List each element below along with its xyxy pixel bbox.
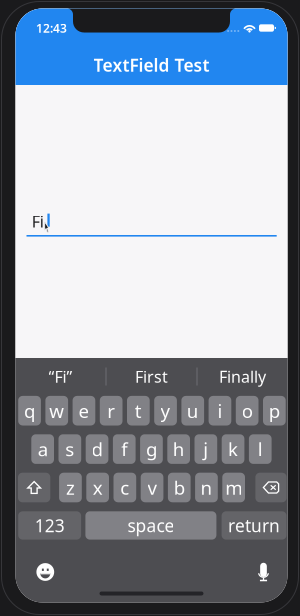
staticText: o: [242, 398, 253, 423]
staticText: Finally: [219, 366, 266, 387]
button[interactable]: i: [209, 396, 231, 425]
staticText: v: [147, 475, 156, 500]
button[interactable]: return: [222, 511, 286, 540]
button[interactable]: e: [73, 396, 95, 425]
button[interactable]: 123: [18, 511, 81, 540]
button[interactable]: m: [222, 473, 245, 502]
staticText: return: [228, 514, 280, 537]
staticText: q: [24, 398, 35, 423]
button[interactable]: j: [194, 434, 217, 464]
button[interactable]: k: [222, 434, 244, 464]
staticText: p: [269, 398, 280, 423]
button[interactable]: First: [106, 358, 196, 395]
button[interactable]: u: [181, 396, 204, 425]
staticText: space: [127, 514, 174, 537]
staticText: l: [258, 437, 263, 461]
button[interactable]: f: [113, 434, 136, 464]
staticText: a: [38, 437, 48, 461]
staticText: u: [187, 398, 199, 423]
staticText: 123: [35, 514, 65, 537]
staticText: f: [121, 437, 127, 461]
staticText: y: [160, 398, 170, 423]
button[interactable]: Finally: [197, 358, 287, 395]
button[interactable]: space: [85, 511, 216, 540]
button[interactable]: Emoji keyboard: [26, 555, 64, 589]
button[interactable]: a: [31, 434, 54, 464]
staticText: i: [217, 398, 222, 423]
staticText: First: [135, 366, 168, 387]
button[interactable]: o: [236, 396, 258, 425]
button[interactable]: n: [195, 473, 218, 502]
staticText: w: [49, 398, 64, 423]
staticText: h: [173, 437, 185, 461]
button[interactable]: y: [154, 396, 177, 425]
staticText: n: [200, 475, 212, 500]
button[interactable]: p: [263, 396, 286, 425]
button[interactable]: l: [249, 434, 272, 464]
button[interactable]: x: [86, 473, 109, 502]
staticText: k: [228, 437, 238, 461]
staticText: t: [135, 398, 142, 423]
staticText: s: [65, 437, 74, 461]
staticText: “Fi”: [48, 366, 72, 387]
button[interactable]: “Fi”: [15, 358, 105, 395]
staticText: TextField Test: [93, 53, 209, 76]
staticText: m: [225, 475, 242, 500]
staticText: d: [91, 437, 102, 461]
staticText: r: [107, 398, 115, 423]
staticText: z: [66, 475, 75, 500]
button[interactable]: q: [18, 396, 41, 425]
staticText: g: [146, 437, 157, 461]
button[interactable]: r: [100, 396, 122, 425]
staticText: 12:43: [36, 20, 67, 36]
staticText: c: [120, 475, 129, 500]
button[interactable]: Delete: [255, 473, 287, 502]
button[interactable]: b: [168, 473, 191, 502]
button[interactable]: Shift: [18, 473, 50, 502]
staticText: Fi: [32, 211, 44, 232]
button[interactable]: z: [59, 473, 82, 502]
button[interactable]: c: [113, 473, 136, 502]
staticText: b: [174, 475, 185, 500]
button[interactable]: s: [58, 434, 81, 464]
button[interactable]: w: [45, 396, 68, 425]
button[interactable]: v: [141, 473, 163, 502]
staticText: e: [78, 398, 89, 423]
button[interactable]: g: [140, 434, 163, 464]
staticText: j: [203, 437, 208, 461]
button[interactable]: h: [167, 434, 190, 464]
button[interactable]: Dictate: [244, 555, 282, 589]
staticText: x: [93, 475, 103, 500]
button[interactable]: t: [127, 396, 150, 425]
button[interactable]: d: [86, 434, 108, 464]
